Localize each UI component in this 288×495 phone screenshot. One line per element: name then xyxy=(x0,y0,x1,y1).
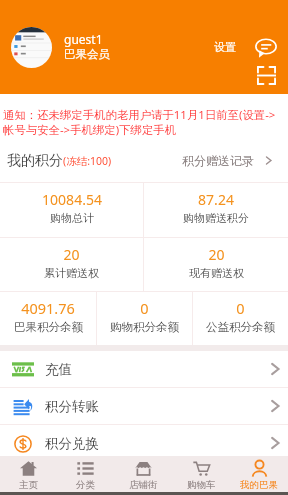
staticText: 购物总计 xyxy=(50,211,94,225)
staticText: 巴果会员 xyxy=(64,47,110,61)
staticText: 现有赠送权 xyxy=(189,266,244,280)
staticText: 店铺街 xyxy=(129,479,158,491)
button[interactable]: 店铺街 xyxy=(114,456,172,492)
button[interactable]: 积分赠送记录 xyxy=(182,153,274,168)
button[interactable]: 通知：还未绑定手机的老用户请于11月1日前至(设置->帐号与安全->手机绑定)下… xyxy=(0,94,288,143)
button[interactable]: Messages xyxy=(255,37,277,59)
button[interactable]: 87.24 xyxy=(144,183,288,237)
button[interactable]: 充值 xyxy=(0,351,288,387)
staticText: guest1 xyxy=(64,31,103,47)
staticText: 我的积分(冻结:100) xyxy=(7,152,112,170)
staticText: 通知：还未绑定手机的老用户请于11月1日前至(设置->帐号与安全->手机绑定)下… xyxy=(3,107,285,138)
staticText: 设置 xyxy=(214,40,236,54)
button[interactable]: 购物车 xyxy=(172,456,230,492)
button[interactable]: 我的巴果 xyxy=(230,456,288,492)
staticText: 公益积分余额 xyxy=(206,320,275,334)
button[interactable]: 主页 xyxy=(0,456,57,492)
staticText: 积分转账 xyxy=(45,398,99,415)
staticText: 20 xyxy=(63,245,80,264)
button[interactable]: 分类 xyxy=(57,456,114,492)
staticText: 10084.54 xyxy=(42,190,102,209)
button[interactable]: 设置 xyxy=(208,36,242,58)
button[interactable]: 0 xyxy=(193,292,288,345)
staticText: 分类 xyxy=(76,479,95,491)
staticText: 0 xyxy=(236,298,245,318)
staticText: 87.24 xyxy=(198,190,234,209)
button[interactable]: 20 xyxy=(0,238,143,291)
button[interactable]: 积分转账 xyxy=(0,388,288,424)
staticText: 我的巴果 xyxy=(240,479,278,491)
staticText: 4091.76 xyxy=(21,298,75,318)
button[interactable]: Scan QR code xyxy=(257,66,276,85)
staticText: 巴果积分余额 xyxy=(14,320,83,334)
staticText: 积分兑换 xyxy=(45,435,99,452)
staticText: 积分赠送记录 xyxy=(182,153,254,168)
button[interactable]: 积分兑换 xyxy=(0,425,288,461)
button[interactable]: 0 xyxy=(97,292,192,345)
staticText: 购物积分余额 xyxy=(110,320,179,334)
button[interactable]: 4091.76 xyxy=(0,292,96,345)
staticText: 0 xyxy=(140,298,149,318)
staticText: 购物赠送积分 xyxy=(183,211,249,225)
staticText: 累计赠送权 xyxy=(44,266,99,280)
button[interactable]: 20 xyxy=(144,238,288,291)
staticText: 主页 xyxy=(19,479,38,491)
button[interactable]: Avatar xyxy=(11,27,52,68)
staticText: 购物车 xyxy=(187,479,216,491)
staticText: 20 xyxy=(208,245,225,264)
staticText: 充值 xyxy=(45,361,72,378)
button[interactable]: 10084.54 xyxy=(0,183,143,237)
